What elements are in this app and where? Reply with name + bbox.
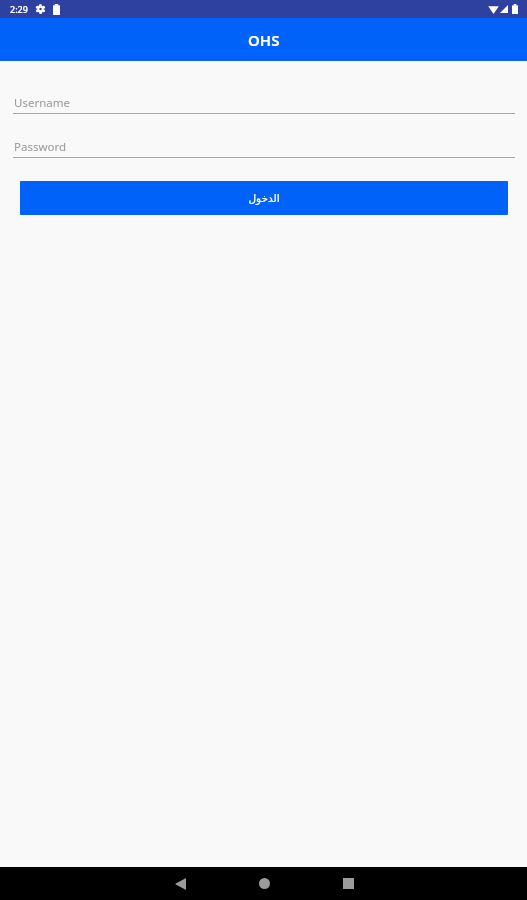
button[interactable]: Username <box>13 95 515 114</box>
button[interactable]: Home <box>242 867 286 900</box>
staticText: 2:29 <box>10 3 28 15</box>
staticText: Username <box>14 95 70 111</box>
staticText: Password <box>14 139 67 155</box>
staticText: OHS <box>248 30 280 50</box>
staticText: الدخول <box>248 192 280 204</box>
button[interactable]: Back <box>158 867 202 900</box>
button[interactable]: الدخول <box>20 181 508 215</box>
button[interactable]: Password <box>13 139 515 158</box>
button[interactable]: Recents <box>326 867 370 900</box>
